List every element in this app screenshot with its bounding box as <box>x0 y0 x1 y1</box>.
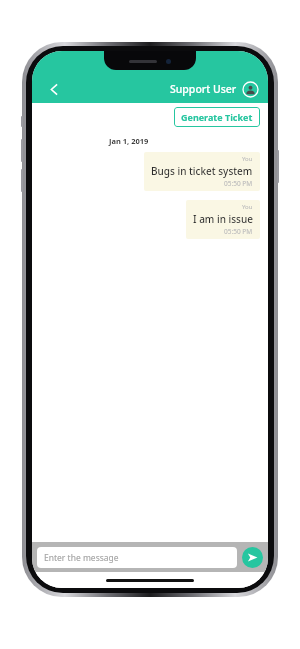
button[interactable]: Generate Ticket <box>174 107 260 127</box>
staticText: Support User <box>170 82 237 96</box>
staticText: Generate Ticket <box>181 111 253 123</box>
staticText: Enter the message <box>44 552 119 564</box>
staticText: You <box>242 203 253 211</box>
button[interactable]: You <box>144 152 260 191</box>
button[interactable]: You <box>186 200 260 239</box>
button[interactable]: Send <box>242 547 263 568</box>
staticText: Bugs in ticket system <box>151 164 253 178</box>
staticText: 05:50 PM <box>224 179 253 188</box>
staticText: 05:50 PM <box>224 227 253 236</box>
staticText: Jan 1, 2019 <box>109 136 149 146</box>
staticText: I am in issue <box>193 212 253 226</box>
button[interactable]: Enter the message <box>37 547 237 568</box>
button[interactable]: Profile <box>243 82 258 97</box>
staticText: You <box>242 155 253 163</box>
button[interactable]: Back <box>42 77 66 101</box>
